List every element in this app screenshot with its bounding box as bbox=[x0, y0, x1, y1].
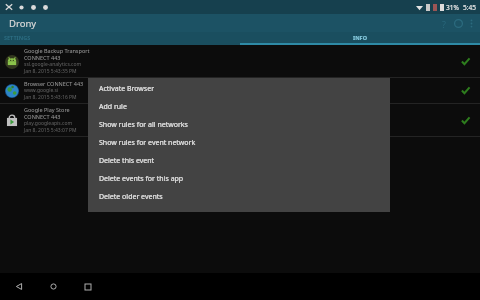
staticText: CONNECT 443 bbox=[24, 54, 61, 61]
button[interactable]: Delete older events bbox=[88, 188, 390, 206]
staticText: 5:45 bbox=[463, 3, 476, 12]
staticText: ssl.google-analytics.com bbox=[24, 61, 82, 68]
staticText: Jan 8, 2015 5:43:35 PM bbox=[24, 68, 77, 75]
staticText: ? bbox=[442, 18, 446, 30]
staticText: 31% bbox=[446, 3, 459, 12]
staticText: Drony bbox=[9, 17, 37, 30]
staticText: CONNECT 443 bbox=[24, 113, 61, 120]
staticText: Google Play Store bbox=[24, 106, 70, 113]
button[interactable]: Home bbox=[43, 276, 64, 297]
button[interactable]: Delete this event bbox=[88, 152, 390, 170]
button[interactable]: Add rule bbox=[88, 98, 390, 116]
staticText: INFO bbox=[353, 34, 367, 41]
staticText: Google Backup Transport bbox=[24, 47, 90, 54]
button[interactable]: Refresh bbox=[451, 16, 466, 31]
button[interactable]: Google Play Store bbox=[0, 104, 480, 137]
button[interactable]: Show rules for all networks bbox=[88, 116, 390, 134]
staticText: Show rules for event network bbox=[99, 138, 196, 148]
button[interactable]: Delete events for this app bbox=[88, 170, 390, 188]
staticText: SETTINGS bbox=[4, 34, 31, 41]
button[interactable]: More options bbox=[466, 18, 477, 29]
button[interactable]: SETTINGS bbox=[0, 32, 240, 43]
button[interactable]: Google Backup Transport bbox=[0, 45, 480, 78]
staticText: Jan 8, 2015 5:43:16 PM bbox=[24, 94, 77, 101]
staticText: Show rules for all networks bbox=[99, 120, 188, 130]
button[interactable]: Recent apps bbox=[77, 276, 98, 297]
staticText: Delete this event bbox=[99, 156, 155, 166]
staticText: Delete events for this app bbox=[99, 174, 184, 184]
staticText: play.googleapis.com bbox=[24, 120, 73, 127]
button[interactable]: Activate Browser bbox=[88, 80, 390, 98]
staticText: Delete older events bbox=[99, 192, 163, 202]
button[interactable]: Show rules for event network bbox=[88, 134, 390, 152]
button[interactable]: Browser CONNECT 443 bbox=[0, 78, 480, 104]
button[interactable]: INFO bbox=[240, 32, 480, 43]
staticText: Add rule bbox=[99, 102, 127, 112]
staticText: Browser CONNECT 443 bbox=[24, 80, 84, 87]
staticText: www.google.si bbox=[24, 87, 59, 94]
staticText: Activate Browser bbox=[99, 84, 155, 94]
button[interactable]: Back bbox=[9, 276, 30, 297]
staticText: Jan 8, 2015 5:43:07 PM bbox=[24, 127, 77, 134]
